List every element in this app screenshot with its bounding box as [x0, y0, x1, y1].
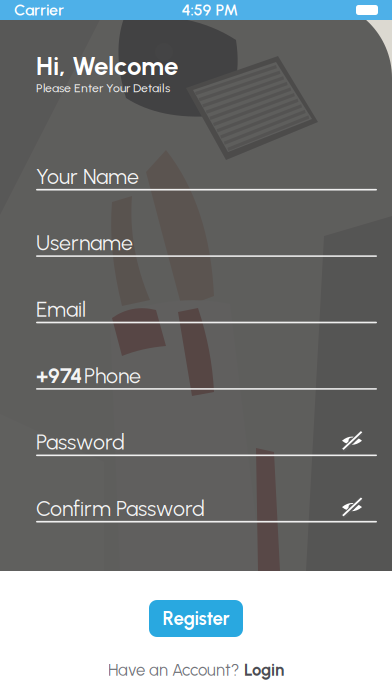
- staticText: Carrier: [14, 0, 64, 20]
- staticText: Have an Account?: [108, 660, 239, 680]
- staticText: Hi, Welcome: [36, 50, 178, 81]
- staticText: Register: [162, 607, 229, 630]
- staticText: Password: [36, 429, 125, 455]
- staticText: Your Name: [36, 164, 139, 189]
- staticText: +974: [36, 363, 82, 388]
- staticText: Email: [36, 296, 86, 322]
- staticText: Phone: [84, 363, 141, 388]
- button[interactable]: Show Password: [342, 434, 377, 450]
- staticText: Please Enter Your Details: [36, 81, 170, 95]
- button[interactable]: Show Confirm Password: [342, 500, 377, 516]
- button[interactable]: Have an Account?: [0, 658, 392, 682]
- staticText: 4:59 PM: [181, 0, 238, 20]
- staticText: Confirm Password: [36, 496, 205, 521]
- staticText: Username: [36, 230, 133, 256]
- button[interactable]: Register: [149, 600, 243, 637]
- staticText: Login: [244, 660, 284, 680]
